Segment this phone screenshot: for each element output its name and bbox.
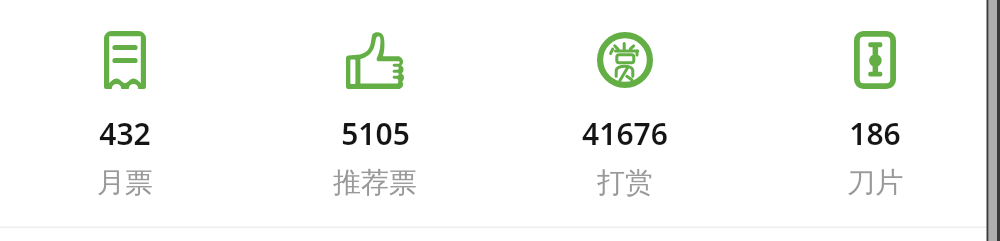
button[interactable]: Monthly tickets [0,0,250,241]
staticText: 186 [849,113,901,154]
staticText: 5105 [341,113,410,154]
staticText: 打赏 [597,165,653,200]
staticText: 月票 [97,165,153,200]
staticText: 推荐票 [333,165,417,200]
button[interactable]: Reward [500,0,750,241]
button[interactable]: Recommendation votes [250,0,500,241]
staticText: 刀片 [847,165,903,200]
button[interactable]: Blades [750,0,1000,241]
staticText: 41676 [582,113,668,154]
staticText: 432 [99,113,151,154]
